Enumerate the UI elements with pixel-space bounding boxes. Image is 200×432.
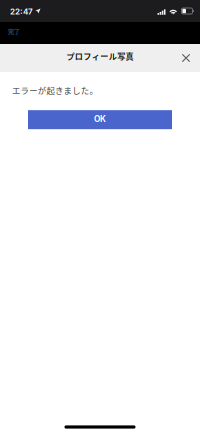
staticText: エラーが起きました。 [12,84,97,96]
staticText: プロフィール写真 [66,50,134,62]
button[interactable]: OK [28,110,172,129]
button[interactable]: Close [177,49,195,67]
staticText: 22:47 [10,7,33,16]
button[interactable]: 完了 [6,25,22,41]
staticText: 完了 [8,27,20,35]
staticText: OK [94,114,106,124]
